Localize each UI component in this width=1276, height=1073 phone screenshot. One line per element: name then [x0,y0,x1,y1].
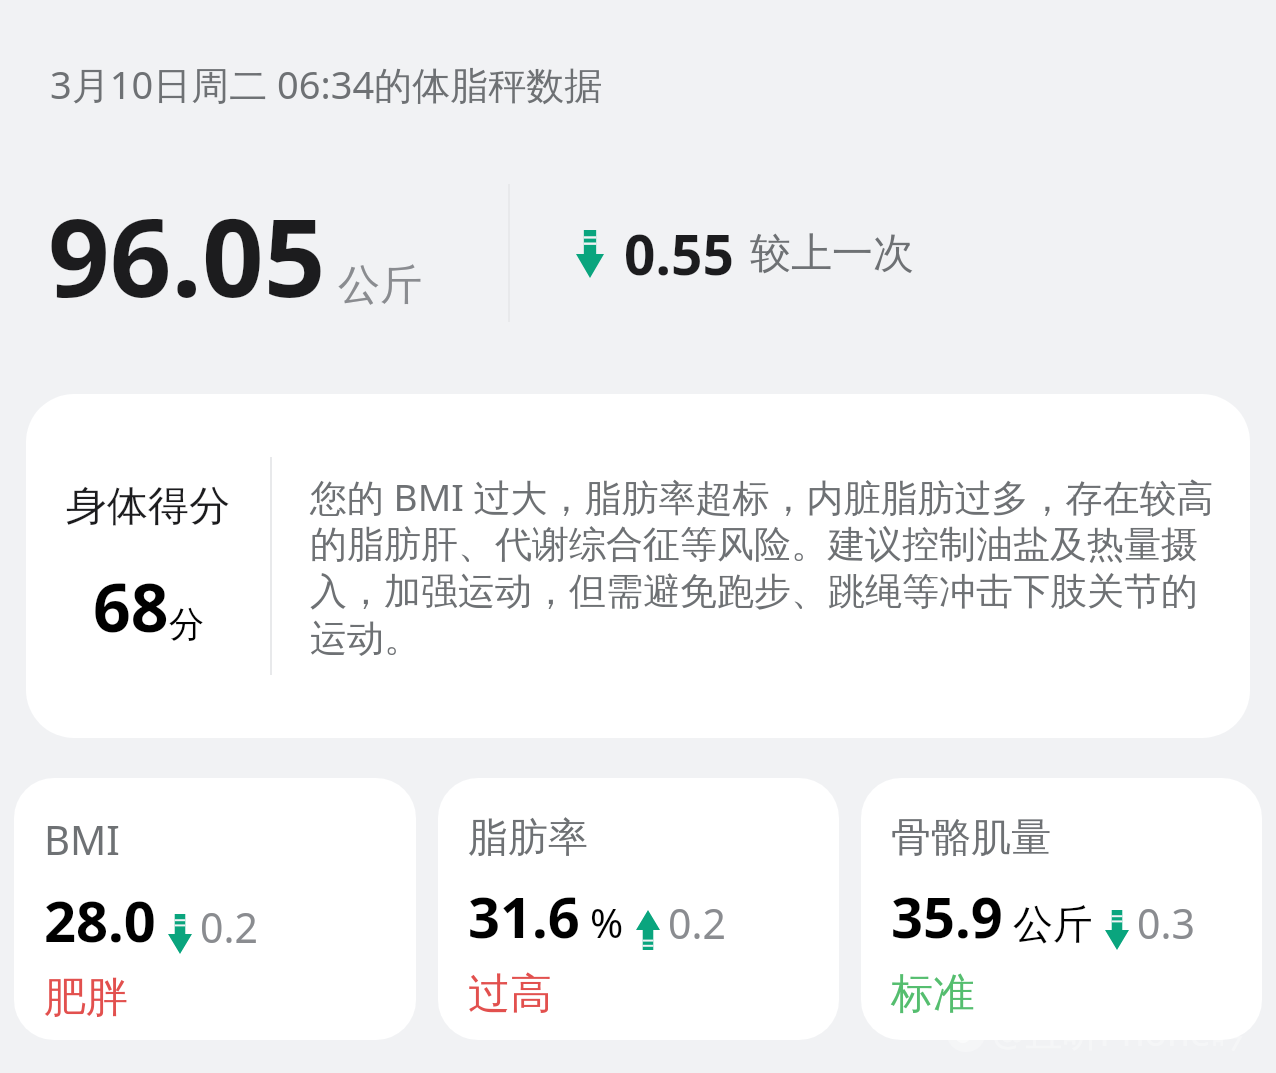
staticText: 标准 [891,968,975,1021]
staticText: 68 [93,561,169,651]
staticText: 公斤 [338,259,422,312]
staticText: @且听Phone吟 [992,1006,1248,1057]
staticText: 96.05 [48,182,326,324]
staticText: 骨骼肌量 [891,812,1051,862]
other: Decreased [168,914,192,954]
other: Increased [636,910,660,950]
staticText: BMI [44,812,120,866]
staticText: 脂肪率 [468,812,588,862]
staticText: 31.6 [468,878,580,954]
staticText: % [590,895,624,949]
staticText: 3月10日周二 06:34的体脂秤数据 [50,58,603,110]
staticText: 0.55 [624,216,734,291]
button[interactable]: 身体得分 [26,394,1250,738]
staticText: 0.2 [200,899,258,955]
staticText: 35.9 [891,878,1003,954]
button[interactable]: BMI [14,778,416,1040]
staticText: 0.2 [668,895,726,951]
staticText: 身体得分 [66,481,230,533]
staticText: 较上一次 [750,228,914,280]
other: Decreased [1105,910,1129,950]
staticText: 公斤 [1013,899,1093,949]
staticText: 过高 [468,968,552,1021]
button[interactable]: 脂肪率 [438,778,839,1040]
staticText: 您的 BMI 过大，脂肪率超标，内脏脂肪过多，存在较高的脂肪肝、代谢综合征等风险… [310,471,1228,662]
staticText: 28.0 [44,882,156,958]
button[interactable]: 骨骼肌量 [861,778,1262,1040]
staticText: 0.3 [1137,895,1195,951]
staticText: 分 [169,602,204,646]
other: Decreased [576,230,604,278]
staticText: 肥胖 [44,972,128,1025]
